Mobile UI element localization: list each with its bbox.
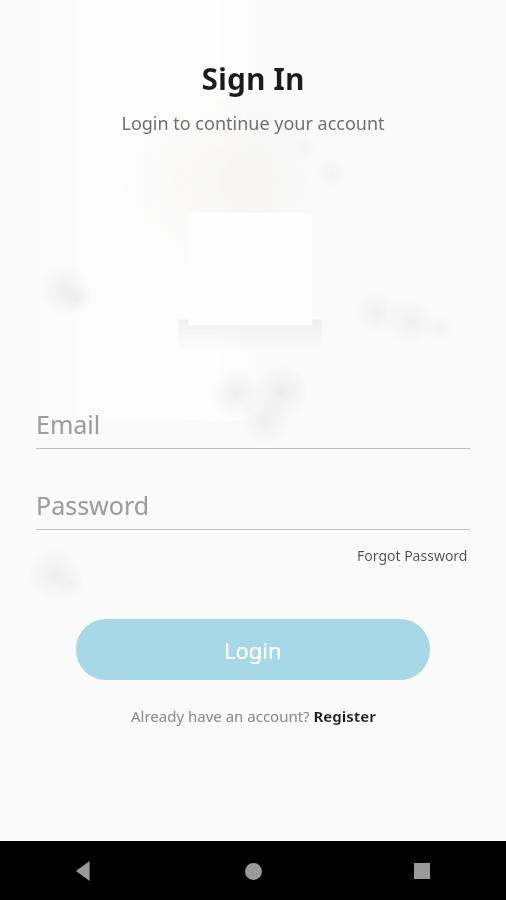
staticText: Already have an account? Register (131, 706, 376, 726)
button[interactable]: Back (56, 843, 112, 899)
button[interactable]: Login (76, 619, 430, 680)
button[interactable]: Already have an account? Register (36, 706, 470, 726)
button[interactable]: Email (36, 400, 470, 449)
button[interactable]: Recent apps (394, 843, 450, 899)
staticText: Login to continue your account (0, 111, 506, 136)
button[interactable]: Home (225, 843, 281, 899)
button[interactable]: Password (36, 481, 470, 530)
staticText: Email (36, 407, 101, 441)
staticText: Sign In (0, 58, 506, 99)
staticText: Login (224, 635, 282, 665)
button[interactable]: Forgot Password (355, 544, 470, 567)
staticText: Password (36, 488, 150, 522)
staticText: Forgot Password (357, 546, 468, 565)
